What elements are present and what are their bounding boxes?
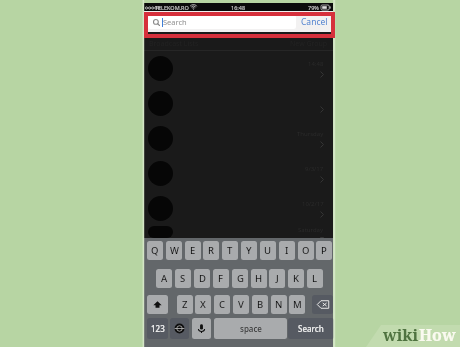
button[interactable]: 123 — [147, 318, 168, 339]
button[interactable]: F — [213, 269, 229, 288]
staticText: T — [227, 244, 233, 257]
staticText: C — [219, 298, 226, 311]
button[interactable]: T — [222, 241, 238, 260]
staticText: A — [161, 272, 168, 285]
staticText: W — [170, 244, 179, 257]
staticText: G — [237, 272, 244, 285]
button[interactable]: V — [233, 295, 249, 314]
staticText: wiki — [383, 324, 419, 346]
staticText: E — [190, 244, 196, 257]
staticText: N — [275, 298, 283, 311]
staticText: K — [293, 272, 300, 285]
button[interactable]: Change keyboard — [170, 318, 189, 339]
button[interactable]: Backspace — [312, 295, 333, 314]
button[interactable]: Y — [241, 241, 257, 260]
staticText: M — [293, 298, 302, 311]
button[interactable] — [148, 86, 324, 121]
staticText: J — [276, 272, 279, 285]
staticText: 10/2/17 — [302, 200, 324, 208]
staticText: TELEKOM.RO — [155, 4, 189, 11]
staticText: S — [180, 272, 186, 285]
staticText: U — [264, 244, 272, 257]
button[interactable]: 14:48 — [148, 51, 324, 86]
staticText: How — [419, 324, 456, 346]
button[interactable]: P — [316, 241, 332, 260]
button[interactable]: Search — [288, 318, 334, 339]
button[interactable]: Saturday — [148, 226, 324, 238]
button[interactable]: Shift — [147, 295, 168, 314]
button[interactable]: K — [288, 269, 304, 288]
staticText: O — [302, 244, 310, 257]
button[interactable]: D — [194, 269, 210, 288]
staticText: R — [208, 244, 215, 257]
button[interactable]: 9/3/17 — [148, 156, 324, 191]
button[interactable]: 10/2/17 — [148, 191, 324, 226]
button[interactable]: R — [203, 241, 219, 260]
staticText: Z — [182, 298, 188, 311]
staticText: L — [312, 272, 318, 285]
button[interactable]: S — [175, 269, 191, 288]
staticText: Cancel — [301, 16, 328, 28]
button[interactable]: Q — [147, 241, 163, 260]
staticText: Saturday — [298, 226, 324, 234]
button[interactable]: L — [307, 269, 323, 288]
staticText: 79% — [308, 4, 319, 11]
staticText: H — [255, 272, 263, 285]
staticText: D — [199, 272, 206, 285]
button[interactable]: E — [185, 241, 201, 260]
button[interactable]: U — [260, 241, 276, 260]
button[interactable]: Search — [148, 15, 296, 29]
button[interactable]: X — [195, 295, 211, 314]
staticText: B — [257, 298, 264, 311]
button[interactable]: C — [214, 295, 230, 314]
staticText: 123 — [151, 323, 165, 334]
staticText: Search — [163, 17, 187, 27]
staticText: X — [200, 298, 206, 311]
staticText: 14:48 — [308, 60, 324, 68]
staticText: Thursday — [297, 130, 324, 138]
staticText: Q — [151, 244, 159, 257]
button[interactable]: Cancel — [301, 16, 328, 28]
staticText: P — [321, 244, 327, 257]
staticText: space — [240, 323, 262, 334]
button[interactable]: N — [271, 295, 287, 314]
button[interactable]: Dictate — [192, 318, 211, 339]
button[interactable]: space — [214, 318, 287, 339]
button[interactable]: W — [166, 241, 182, 260]
staticText: Search — [298, 323, 324, 334]
button[interactable]: Thursday — [148, 121, 324, 156]
staticText: V — [238, 298, 244, 311]
button[interactable]: Z — [177, 295, 193, 314]
staticText: 16:48 — [231, 4, 246, 11]
button[interactable]: G — [232, 269, 248, 288]
staticText: I — [285, 244, 289, 257]
staticText: Y — [246, 244, 252, 257]
button[interactable]: M — [289, 295, 305, 314]
button[interactable]: I — [279, 241, 295, 260]
button[interactable]: A — [156, 269, 172, 288]
button[interactable]: H — [251, 269, 267, 288]
staticText: F — [218, 272, 224, 285]
button[interactable]: J — [269, 269, 285, 288]
button[interactable]: O — [298, 241, 314, 260]
button[interactable]: B — [252, 295, 268, 314]
